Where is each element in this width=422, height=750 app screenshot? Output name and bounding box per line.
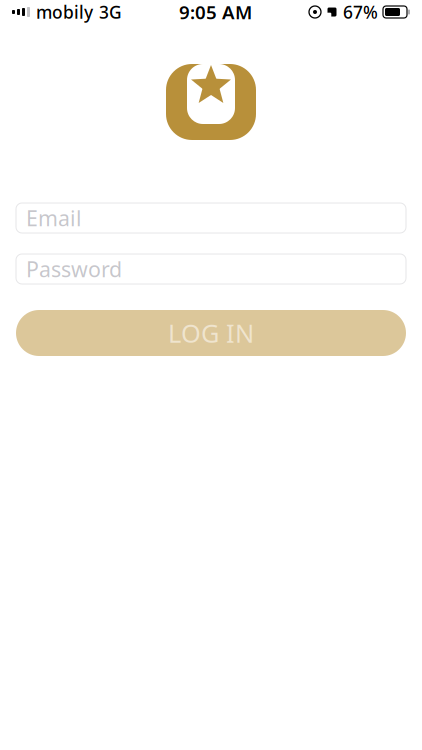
staticText: 67%	[343, 0, 378, 23]
staticText: 3G	[99, 0, 122, 23]
button[interactable]: LOG IN	[16, 310, 406, 356]
button[interactable]: Email	[16, 203, 406, 233]
button[interactable]: Password	[16, 254, 406, 284]
staticText: LOG IN	[168, 316, 254, 350]
staticText: 9:05 AM	[179, 0, 252, 24]
staticText: Password	[26, 255, 122, 283]
staticText: mobily	[36, 0, 93, 23]
staticText: Email	[26, 204, 82, 232]
